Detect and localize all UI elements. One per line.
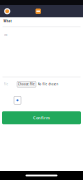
button[interactable]: Confirm (2, 111, 81, 124)
staticText: Choose File (18, 82, 35, 86)
staticText: Text (3, 33, 7, 37)
button[interactable]: Site logo (4, 8, 10, 14)
staticText: Confirm (33, 115, 50, 120)
staticText: File (3, 82, 8, 86)
button[interactable]: Choose File (17, 81, 36, 87)
staticText: What (3, 19, 11, 23)
staticText: No file chosen (37, 82, 58, 86)
button[interactable]: App icon (35, 8, 41, 14)
